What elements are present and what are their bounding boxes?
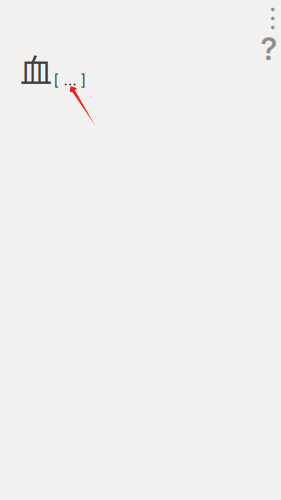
button[interactable]: Help (255, 33, 281, 65)
button[interactable]: More options (260, 3, 281, 37)
staticText: ? (260, 30, 277, 67)
staticText: [ … ] (53, 71, 86, 89)
staticText: 血 (20, 45, 52, 92)
